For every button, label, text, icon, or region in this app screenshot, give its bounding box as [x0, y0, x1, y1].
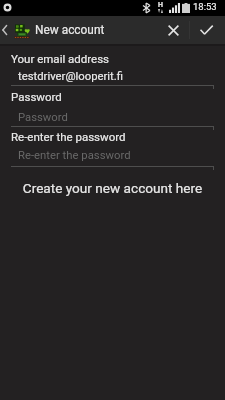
- staticText: Create your new account here: [0, 180, 225, 196]
- staticText: 18:53: [193, 1, 217, 12]
- button[interactable]: [11, 66, 214, 86]
- staticText: Password: [18, 111, 68, 124]
- button[interactable]: Done: [190, 16, 222, 44]
- staticText: Your email address: [11, 52, 110, 65]
- button[interactable]: Cancel: [157, 16, 189, 44]
- staticText: H: [158, 1, 163, 9]
- staticText: Password: [11, 90, 62, 103]
- staticText: testdriver@looperit.fi: [18, 70, 123, 83]
- button[interactable]: Navigate up: [0, 16, 32, 44]
- staticText: Re-enter the password: [18, 149, 131, 162]
- staticText: Re-enter the password: [11, 130, 126, 143]
- staticText: New account: [35, 23, 105, 37]
- button[interactable]: [11, 145, 214, 167]
- button[interactable]: [11, 107, 214, 127]
